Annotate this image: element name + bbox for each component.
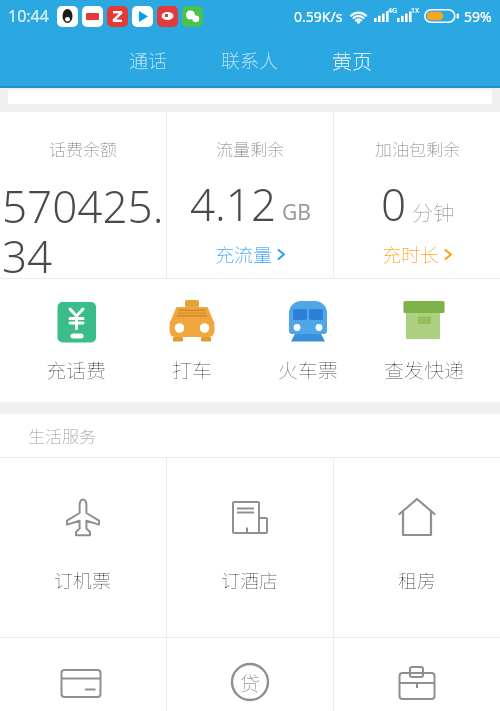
staticText: 联系人 [221,46,279,74]
staticText: 充时长 [382,240,440,268]
button[interactable]: 话费余额 [0,112,166,278]
button[interactable]: 充时长 [382,240,453,268]
button[interactable]: 充流量 [215,240,286,268]
button[interactable]: 黄页 [301,32,403,88]
staticText: 4G [388,6,398,16]
staticText: 10:44 [8,5,49,27]
button[interactable] [334,638,500,711]
staticText: 打车 [172,355,212,384]
button[interactable] [0,638,166,711]
staticText: 火车票 [278,355,338,384]
staticText: 订机票 [54,566,112,594]
staticText: 59% [464,7,492,26]
staticText: 话费余额 [0,136,166,161]
button[interactable]: 贷 [167,638,333,711]
staticText: 4.12 [190,174,277,234]
button[interactable]: 火车票 [250,279,366,402]
staticText: 租房 [398,566,437,594]
button[interactable]: 联系人 [199,32,301,88]
button[interactable]: 打车 [134,279,250,402]
staticText: 0.59K/s [294,7,343,26]
staticText: 生活服务 [28,423,96,448]
staticText: 加油包剩余 [375,136,460,161]
button[interactable]: 订机票 [0,458,166,637]
button[interactable]: 通话 [97,32,199,88]
staticText: 1X [411,6,420,16]
staticText: 分钟 [412,197,454,227]
staticText: 流量剩余 [216,136,284,161]
button[interactable]: 订酒店 [167,458,333,637]
staticText: 通话 [129,46,168,74]
button[interactable]: 查发快递 [366,279,482,402]
staticText: 黄页 [332,46,372,75]
staticText: GB [282,198,311,227]
button[interactable]: 加油包剩余 [334,112,500,278]
button[interactable]: 充话费 [18,279,134,402]
staticText: 贷 [240,668,260,697]
staticText: 充流量 [215,240,273,268]
button[interactable]: 租房 [334,458,500,637]
staticText: 订酒店 [221,566,279,594]
button[interactable]: 流量剩余 [167,112,333,278]
staticText: 570425. 34 [2,176,164,278]
staticText: 0 [381,174,407,234]
staticText: 查发快递 [384,355,464,384]
staticText: 充话费 [46,355,106,384]
